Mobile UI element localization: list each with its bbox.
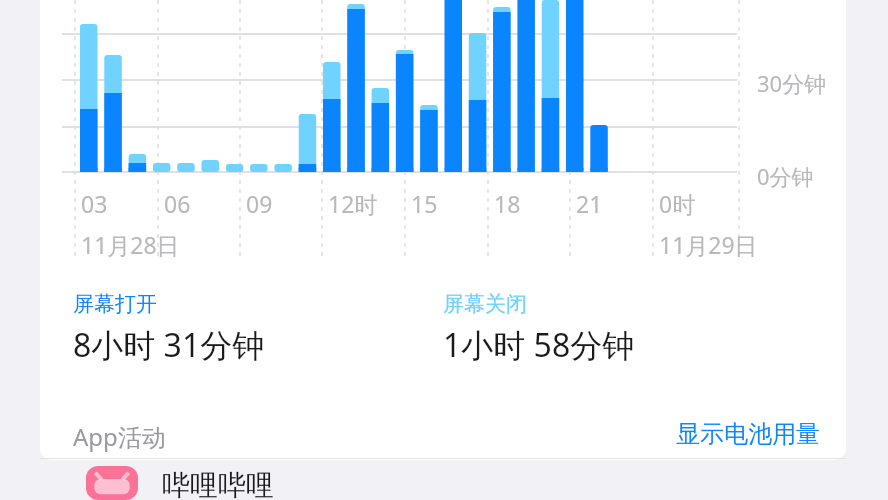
staticText: 屏幕关闭 — [443, 291, 527, 317]
staticText: 06 — [164, 188, 191, 219]
staticText: 哔哩哔哩 — [162, 468, 274, 500]
staticText: 15 — [411, 188, 438, 219]
button[interactable]: 屏幕关闭 — [443, 291, 635, 367]
staticText: 0时 — [659, 188, 696, 219]
staticText: 1小时 58分钟 — [443, 323, 635, 367]
staticText: 30分钟 — [757, 68, 827, 98]
button[interactable]: 屏幕打开 — [73, 291, 265, 367]
staticText: 12时 — [328, 188, 378, 219]
staticText: 21 — [576, 188, 603, 219]
staticText: 8小时 31分钟 — [73, 323, 265, 367]
staticText: 11月29日 — [659, 229, 758, 260]
staticText: 18 — [494, 188, 521, 219]
staticText: 0分钟 — [757, 161, 814, 191]
staticText: 09 — [246, 188, 273, 219]
staticText: 03 — [81, 188, 108, 219]
button[interactable]: 哔哩哔哩 App icon — [40, 466, 846, 500]
other: 哔哩哔哩 App icon — [86, 466, 138, 500]
staticText: 11月28日 — [81, 229, 180, 260]
staticText: App活动 — [73, 420, 166, 453]
staticText: 屏幕打开 — [73, 291, 157, 317]
button[interactable]: 显示电池用量 — [676, 419, 820, 449]
staticText: 显示电池用量 — [676, 419, 820, 449]
